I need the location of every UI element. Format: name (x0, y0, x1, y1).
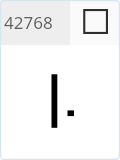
button[interactable]: 42768 (0, 0, 70, 45)
staticText: 42768 (4, 11, 53, 34)
button[interactable]: Stop (70, 0, 120, 45)
